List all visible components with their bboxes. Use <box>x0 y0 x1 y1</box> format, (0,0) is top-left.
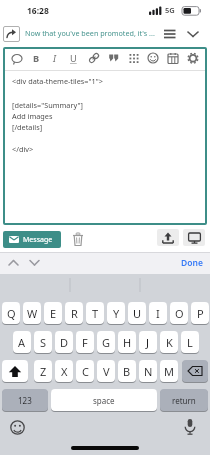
button[interactable]: W <box>23 302 41 324</box>
staticText: N <box>144 364 153 379</box>
staticText: K <box>166 335 173 350</box>
button[interactable]: E <box>44 302 62 324</box>
button[interactable]: Now that you've been promoted, it's ... <box>25 28 163 40</box>
staticText: B <box>33 52 40 65</box>
button[interactable]: Done <box>181 257 203 269</box>
staticText: J <box>146 335 150 350</box>
button[interactable]: Message <box>3 231 61 248</box>
staticText: X <box>61 364 68 379</box>
staticText: 123 <box>18 395 32 406</box>
staticText: I <box>53 52 56 65</box>
staticText: H <box>123 335 132 350</box>
button[interactable] <box>6 255 22 271</box>
staticText: E <box>50 306 57 321</box>
button[interactable] <box>162 27 178 41</box>
button[interactable] <box>183 229 205 246</box>
staticText: W <box>27 306 38 321</box>
staticText: S <box>40 335 47 350</box>
button[interactable]: O <box>170 302 188 324</box>
button[interactable]: M <box>160 360 178 382</box>
staticText: V <box>103 364 110 379</box>
button[interactable]: U <box>68 51 80 65</box>
button[interactable]: D <box>55 331 73 353</box>
button[interactable] <box>146 51 160 65</box>
staticText: G <box>102 335 111 350</box>
button[interactable] <box>10 52 24 66</box>
staticText: Message <box>23 235 53 245</box>
button[interactable] <box>27 255 43 271</box>
button[interactable] <box>9 419 26 436</box>
staticText: D <box>60 335 69 350</box>
staticText: 16:28 <box>27 5 49 17</box>
button[interactable]: Q <box>2 302 20 324</box>
staticText: Q <box>7 306 16 321</box>
staticText: space <box>93 395 115 406</box>
button[interactable]: I <box>50 51 62 65</box>
staticText: [details="Summary"] <box>12 100 83 110</box>
staticText: Y <box>113 306 120 321</box>
button[interactable]: T <box>86 302 104 324</box>
staticText: O <box>175 306 184 321</box>
button[interactable]: V <box>97 360 115 382</box>
button[interactable]: S <box>34 331 52 353</box>
button[interactable] <box>2 360 28 382</box>
staticText: [/details] <box>12 122 43 132</box>
staticText: I <box>156 306 160 321</box>
button[interactable]: U <box>128 302 146 324</box>
button[interactable]: X <box>55 360 73 382</box>
button[interactable]: L <box>181 331 199 353</box>
button[interactable] <box>87 51 101 65</box>
staticText: <div data-theme-tiles="1"> <box>12 76 103 86</box>
button[interactable]: F <box>76 331 94 353</box>
button[interactable]: P <box>191 302 209 324</box>
button[interactable] <box>183 418 197 436</box>
button[interactable]: H <box>118 331 136 353</box>
staticText: L <box>187 335 193 350</box>
button[interactable]: B <box>118 360 136 382</box>
staticText: A <box>18 335 26 350</box>
button[interactable] <box>70 232 86 247</box>
staticText: M <box>164 364 174 379</box>
button[interactable]: C <box>76 360 94 382</box>
button[interactable]: J <box>139 331 157 353</box>
button[interactable]: N <box>139 360 157 382</box>
button[interactable] <box>157 229 179 246</box>
button[interactable] <box>186 28 201 40</box>
button[interactable]: return <box>160 389 208 411</box>
button[interactable]: space <box>51 389 157 411</box>
button[interactable] <box>186 51 200 65</box>
staticText: Add images <box>12 111 53 121</box>
staticText: Done <box>181 257 203 269</box>
staticText: T <box>92 306 99 321</box>
staticText: </div> <box>12 144 34 154</box>
staticText: R <box>71 306 78 321</box>
staticText: B <box>123 364 131 379</box>
staticText: F <box>82 335 88 350</box>
staticText: Z <box>40 364 47 379</box>
staticText: P <box>197 306 204 321</box>
staticText: C <box>82 364 89 379</box>
button[interactable] <box>166 51 180 65</box>
button[interactable]: R <box>65 302 83 324</box>
staticText: U <box>133 306 142 321</box>
staticText: return <box>172 395 196 406</box>
button[interactable]: Y <box>107 302 125 324</box>
button[interactable]: 123 <box>2 389 48 411</box>
button[interactable]: Z <box>34 360 52 382</box>
button[interactable] <box>3 26 20 42</box>
button[interactable] <box>182 360 208 382</box>
button[interactable]: B <box>31 51 43 65</box>
button[interactable]: A <box>13 331 31 353</box>
button[interactable]: G <box>97 331 115 353</box>
button[interactable]: I <box>149 302 167 324</box>
staticText: U <box>70 52 77 65</box>
staticText: Now that you've been promoted, it's ... <box>25 28 155 38</box>
button[interactable]: K <box>160 331 178 353</box>
button[interactable] <box>107 51 121 65</box>
staticText: 5G <box>165 5 175 15</box>
button[interactable] <box>127 51 141 65</box>
